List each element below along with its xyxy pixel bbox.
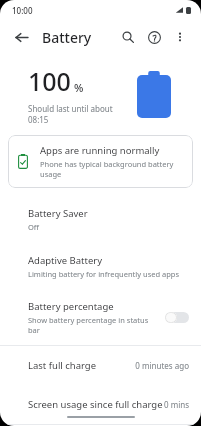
button[interactable]: Screen usage since full charge	[0, 385, 201, 424]
staticText: Adaptive Battery	[28, 254, 103, 267]
button[interactable]: Apps are running normally	[8, 135, 193, 188]
staticText: Battery Saver	[28, 207, 88, 220]
staticText: Limiting battery for infrequently used a…	[28, 269, 180, 279]
staticText: Last full charge	[28, 359, 135, 372]
button[interactable]: Help	[141, 24, 167, 50]
button[interactable]: More options	[167, 24, 193, 50]
staticText: 08:15	[28, 114, 49, 125]
staticText: Show battery percentage in status bar	[28, 315, 159, 335]
other: Battery percentage toggle	[165, 312, 189, 323]
staticText: Battery percentage	[28, 300, 114, 313]
button[interactable]: Search	[115, 24, 141, 50]
staticText: Battery	[42, 28, 92, 47]
button[interactable]: Battery percentage	[0, 290, 201, 345]
button[interactable]: Back	[8, 24, 34, 50]
staticText: 100	[28, 64, 71, 98]
staticText: 0 minutes ago	[135, 360, 189, 371]
staticText: Phone has typical background battery usa…	[40, 159, 183, 179]
staticText: Screen usage since full charge	[28, 398, 164, 411]
staticText: Should last until about	[28, 103, 113, 114]
button[interactable]: Adaptive Battery	[0, 243, 201, 290]
staticText: %	[74, 80, 84, 95]
button[interactable]: Last full charge	[0, 346, 201, 385]
staticText: Off	[28, 222, 40, 232]
button[interactable]: Battery Saver	[0, 196, 201, 243]
staticText: 10:00	[12, 5, 33, 16]
staticText: 0 mins	[164, 399, 189, 410]
staticText: Apps are running normally	[40, 144, 160, 157]
